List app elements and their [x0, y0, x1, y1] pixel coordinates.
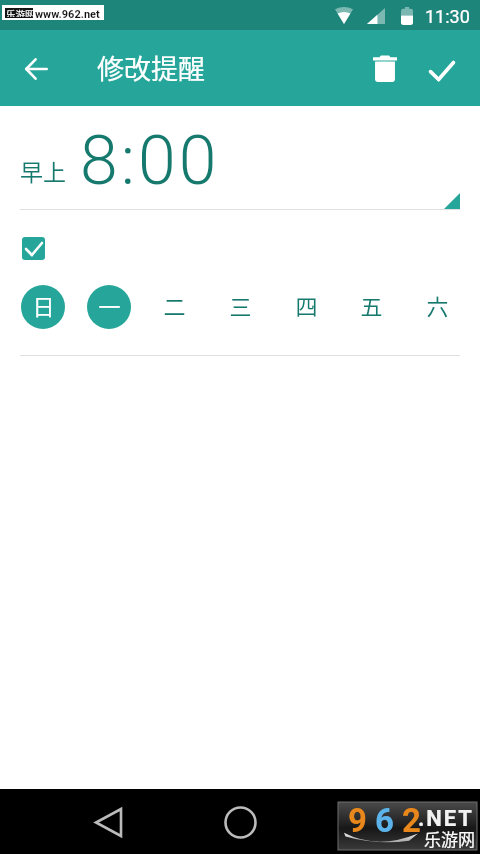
- button[interactable]: 四: [284, 285, 328, 329]
- staticText: 9: [348, 801, 375, 840]
- staticText: 早上: [20, 154, 66, 187]
- staticText: 六: [426, 289, 449, 321]
- staticText: 乐游网: [6, 7, 34, 17]
- staticText: .NET: [418, 806, 474, 832]
- button[interactable]: 五: [349, 285, 393, 329]
- button[interactable]: 日: [21, 285, 65, 329]
- staticText: 五: [360, 289, 383, 321]
- staticText: 三: [229, 289, 252, 321]
- button[interactable]: Home: [216, 798, 264, 846]
- staticText: www.962.net: [35, 8, 100, 21]
- staticText: 二: [163, 289, 186, 321]
- staticText: 四: [295, 289, 318, 321]
- staticText: 一: [98, 289, 121, 321]
- staticText: 日: [32, 289, 55, 321]
- staticText: 6: [375, 801, 402, 840]
- staticText: 2: [402, 801, 429, 840]
- staticText: 11:30: [425, 6, 470, 27]
- button[interactable]: 早上: [0, 106, 480, 210]
- staticText: 8:00: [80, 121, 220, 201]
- button[interactable]: Delete reminder: [361, 44, 409, 92]
- button[interactable]: 六: [415, 285, 459, 329]
- button[interactable]: Save reminder: [418, 47, 466, 95]
- button[interactable]: 三: [218, 285, 262, 329]
- staticText: 修改提醒: [97, 48, 205, 87]
- button[interactable]: Navigate back: [12, 45, 60, 93]
- button[interactable]: Back: [83, 798, 131, 846]
- button[interactable]: 一: [87, 285, 131, 329]
- button[interactable]: Repeat weekly: [22, 237, 45, 260]
- button[interactable]: 二: [152, 285, 196, 329]
- staticText: 乐游网: [424, 826, 475, 851]
